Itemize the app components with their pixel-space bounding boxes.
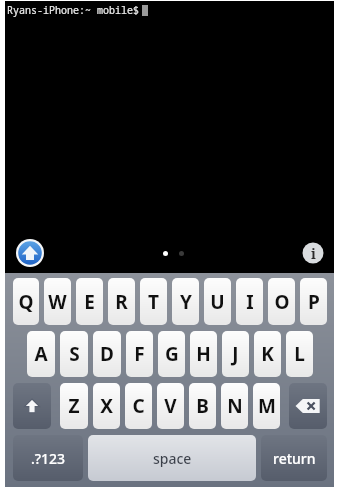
button[interactable]: G bbox=[158, 331, 185, 377]
button[interactable]: Z bbox=[60, 383, 88, 429]
staticText: T bbox=[148, 289, 159, 315]
staticText: M bbox=[258, 393, 276, 419]
staticText: i bbox=[311, 244, 316, 263]
button[interactable]: I bbox=[236, 278, 263, 325]
staticText: G bbox=[165, 341, 179, 367]
button[interactable]: return bbox=[261, 435, 327, 481]
staticText: S bbox=[69, 341, 80, 367]
staticText: L bbox=[294, 341, 305, 367]
staticText: Z bbox=[68, 393, 80, 419]
button[interactable]: B bbox=[189, 383, 216, 429]
staticText: N bbox=[227, 393, 243, 419]
staticText: Q bbox=[18, 289, 34, 315]
staticText: space bbox=[153, 449, 192, 468]
staticText: W bbox=[48, 289, 67, 315]
staticText: F bbox=[134, 341, 145, 367]
button[interactable]: Info bbox=[302, 242, 324, 264]
button[interactable]: X bbox=[93, 383, 120, 429]
button[interactable]: J bbox=[222, 331, 249, 377]
button[interactable]: F bbox=[126, 331, 153, 377]
staticText: K bbox=[261, 341, 274, 367]
button[interactable]: N bbox=[221, 383, 248, 429]
button[interactable]: .?123 bbox=[13, 435, 83, 481]
staticText: C bbox=[132, 393, 145, 419]
button[interactable]: E bbox=[76, 278, 103, 325]
button[interactable]: Q bbox=[13, 278, 39, 325]
button[interactable]: Show keyboard extras bbox=[15, 238, 45, 268]
button[interactable]: C bbox=[125, 383, 152, 429]
staticText: A bbox=[34, 341, 48, 367]
button[interactable]: D bbox=[93, 331, 121, 377]
button[interactable]: K bbox=[254, 331, 281, 377]
button[interactable]: S bbox=[60, 331, 88, 377]
staticText: D bbox=[100, 341, 114, 367]
staticText: X bbox=[100, 393, 113, 419]
button[interactable]: W bbox=[44, 278, 71, 325]
staticText: E bbox=[84, 289, 95, 315]
button[interactable]: U bbox=[204, 278, 231, 325]
button[interactable]: L bbox=[286, 331, 313, 377]
staticText: return bbox=[273, 449, 316, 468]
button[interactable]: A bbox=[27, 331, 55, 377]
button[interactable]: V bbox=[157, 383, 184, 429]
button[interactable]: R bbox=[108, 278, 135, 325]
staticText: P bbox=[308, 289, 320, 315]
staticText: I bbox=[246, 289, 254, 315]
button[interactable]: O bbox=[268, 278, 295, 325]
staticText: H bbox=[196, 341, 211, 367]
staticText: O bbox=[274, 289, 290, 315]
button[interactable]: M bbox=[253, 383, 280, 429]
staticText: V bbox=[164, 393, 177, 419]
staticText: U bbox=[210, 289, 225, 315]
button[interactable]: T bbox=[140, 278, 167, 325]
button[interactable]: Backspace bbox=[289, 383, 327, 429]
staticText: J bbox=[232, 341, 239, 367]
button[interactable]: P bbox=[300, 278, 327, 325]
staticText: R bbox=[115, 289, 128, 315]
staticText: .?123 bbox=[31, 449, 66, 468]
staticText: B bbox=[196, 393, 209, 419]
staticText: Y bbox=[180, 289, 192, 315]
button[interactable]: Y bbox=[172, 278, 199, 325]
button[interactable]: Shift bbox=[13, 383, 51, 429]
button[interactable]: H bbox=[190, 331, 217, 377]
button[interactable]: space bbox=[88, 435, 256, 481]
staticText: Ryans-iPhone:~ mobile$ bbox=[7, 3, 139, 17]
